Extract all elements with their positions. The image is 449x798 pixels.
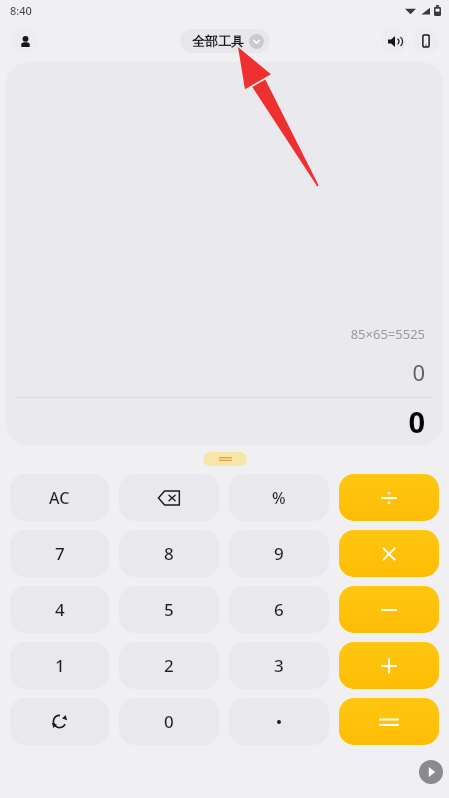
button[interactable]: 5 (119, 586, 219, 633)
button[interactable]: Delete (119, 474, 219, 521)
staticText: AC (49, 487, 70, 509)
button[interactable]: 4 (10, 586, 109, 633)
button[interactable] (339, 698, 439, 745)
button[interactable]: 3 (229, 642, 329, 689)
button[interactable]: % (229, 474, 329, 521)
button[interactable]: AC (10, 474, 109, 521)
button[interactable] (339, 530, 439, 577)
staticText: 8 (164, 542, 174, 565)
staticText: 0 (408, 402, 425, 441)
button[interactable]: Play (419, 760, 443, 784)
button[interactable]: 7 (10, 530, 109, 577)
staticText: 全部工具 (192, 33, 244, 49)
button[interactable]: Convert (10, 698, 109, 745)
staticText: 0 (412, 357, 425, 387)
staticText: 2 (164, 654, 174, 677)
staticText: 0 (164, 710, 174, 733)
button[interactable] (339, 642, 439, 689)
button[interactable] (339, 474, 439, 521)
button[interactable]: 6 (229, 586, 329, 633)
button[interactable]: Sound (381, 28, 407, 54)
button[interactable]: 9 (229, 530, 329, 577)
staticText: 7 (55, 542, 65, 565)
button[interactable]: Expand (203, 452, 247, 466)
button[interactable] (339, 586, 439, 633)
staticText: % (272, 487, 286, 509)
button[interactable] (229, 698, 329, 745)
button[interactable]: 8 (119, 530, 219, 577)
button[interactable]: 2 (119, 642, 219, 689)
staticText: 5 (164, 598, 174, 621)
staticText: 6 (274, 598, 284, 621)
staticText: 85×65=5525 (350, 325, 425, 343)
button[interactable]: 0 (119, 698, 219, 745)
staticText: 4 (55, 598, 65, 621)
button[interactable]: Device (413, 28, 439, 54)
staticText: 8:40 (10, 3, 32, 18)
button[interactable]: 全部工具 (180, 29, 270, 53)
button[interactable]: 1 (10, 642, 109, 689)
staticText: 3 (274, 654, 284, 677)
button[interactable]: Account (12, 28, 38, 54)
staticText: 9 (274, 542, 284, 565)
staticText: 1 (55, 654, 65, 677)
